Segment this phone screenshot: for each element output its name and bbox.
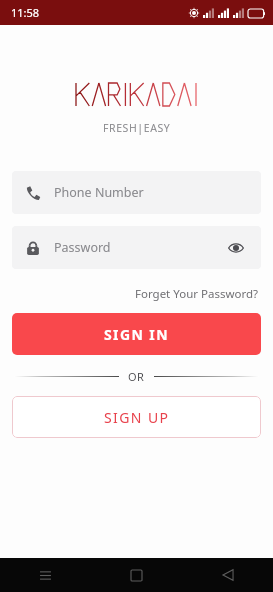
staticText: SIGN IN [104, 325, 169, 344]
staticText: FRESH|EASY [103, 121, 171, 135]
button[interactable]: Back [182, 558, 273, 592]
button[interactable]: Password [12, 226, 261, 269]
button[interactable]: SIGN UP [12, 396, 261, 438]
button[interactable]: Home [91, 558, 182, 592]
staticText: SIGN UP [104, 408, 170, 427]
button[interactable]: SIGN IN [12, 313, 261, 355]
staticText: 11:58 [11, 5, 40, 20]
button[interactable]: Recent apps [0, 558, 91, 592]
button[interactable]: Show password [225, 237, 247, 259]
button[interactable]: Forget Your Password? [133, 284, 261, 304]
staticText: Forget Your Password? [135, 286, 259, 302]
button[interactable]: Phone Number [12, 171, 261, 214]
staticText: Password [54, 239, 225, 256]
staticText: Phone Number [54, 184, 247, 201]
staticText: OR [128, 369, 145, 384]
